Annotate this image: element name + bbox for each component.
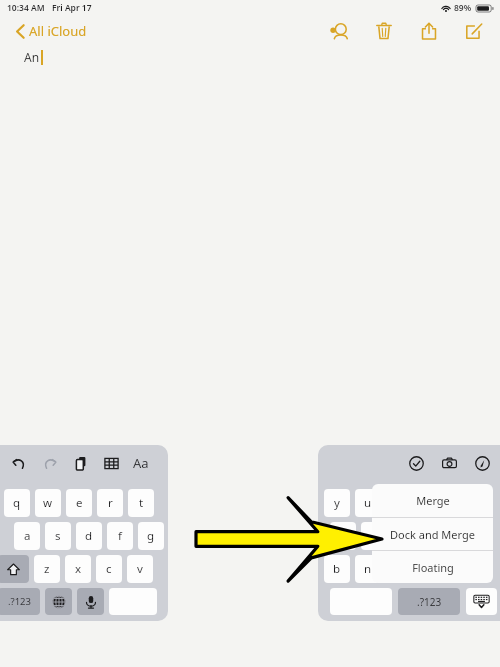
staticText: Merge	[416, 493, 450, 508]
staticText: j	[373, 528, 376, 544]
button[interactable]: w	[35, 489, 61, 517]
staticText: b	[333, 561, 341, 577]
button[interactable]: k	[392, 522, 418, 550]
staticText: q	[13, 495, 21, 511]
button[interactable]: Markup	[472, 453, 492, 473]
button[interactable]: f	[107, 522, 133, 550]
button[interactable]: Add people	[327, 19, 351, 43]
button[interactable]: Floating	[372, 551, 493, 583]
staticText: h	[339, 528, 347, 544]
staticText: s	[55, 528, 61, 544]
staticText: x	[75, 561, 82, 577]
button[interactable]: Space	[330, 588, 392, 615]
staticText: 89%	[454, 2, 472, 14]
staticText: f	[118, 528, 122, 544]
button[interactable]: r	[97, 489, 123, 517]
button[interactable]: Delete	[372, 19, 396, 43]
button[interactable]: y	[324, 489, 350, 517]
button[interactable]: t	[128, 489, 154, 517]
button[interactable]: n	[355, 555, 381, 583]
button[interactable]: u	[355, 489, 381, 517]
button[interactable]: Shift	[0, 555, 29, 583]
button[interactable]: q	[4, 489, 30, 517]
button[interactable]: Space	[109, 588, 157, 615]
button[interactable]: b	[324, 555, 350, 583]
button[interactable]: Undo	[8, 453, 28, 473]
button[interactable]: Dictate	[77, 588, 104, 615]
staticText: d	[85, 528, 93, 544]
button[interactable]: e	[66, 489, 92, 517]
button[interactable]: Language	[45, 588, 72, 615]
staticText: y	[334, 495, 340, 511]
button[interactable]: Camera	[439, 453, 459, 473]
button[interactable]: .?123	[398, 588, 460, 615]
staticText: g	[147, 528, 155, 544]
staticText: c	[106, 561, 112, 577]
button[interactable]: s	[45, 522, 71, 550]
staticText: .?123	[8, 595, 31, 608]
staticText: An	[24, 49, 40, 65]
button[interactable]: Table	[101, 453, 121, 473]
button[interactable]: j	[361, 522, 387, 550]
staticText: n	[364, 561, 372, 577]
button[interactable]: Checklist	[406, 453, 426, 473]
button[interactable]: Dock and Merge	[372, 518, 493, 550]
staticText: u	[364, 495, 372, 511]
staticText: Aa	[133, 454, 149, 472]
button[interactable]: Compose	[462, 19, 486, 43]
staticText: t	[139, 495, 144, 511]
staticText: e	[76, 495, 83, 511]
staticText: v	[137, 561, 143, 577]
button[interactable]: z	[34, 555, 60, 583]
staticText: r	[108, 495, 113, 511]
button[interactable]: Redo	[40, 453, 60, 473]
button[interactable]: g	[138, 522, 164, 550]
button[interactable]: Hide keyboard	[466, 588, 497, 615]
staticText: a	[24, 528, 31, 544]
staticText: .?123	[417, 595, 442, 609]
button[interactable]: a	[14, 522, 40, 550]
button[interactable]: x	[65, 555, 91, 583]
button[interactable]: All iCloud	[12, 18, 91, 44]
staticText: Floating	[412, 560, 454, 575]
staticText: All iCloud	[29, 22, 87, 40]
staticText: Fri Apr 17	[52, 2, 92, 14]
staticText: Dock and Merge	[390, 527, 475, 542]
staticText: k	[402, 528, 409, 544]
button[interactable]: Aa	[130, 452, 152, 474]
button[interactable]: c	[96, 555, 122, 583]
button[interactable]: Merge	[372, 484, 493, 517]
staticText: 10:34 AM	[7, 2, 45, 14]
button[interactable]: d	[76, 522, 102, 550]
staticText: z	[44, 561, 50, 577]
button[interactable]: v	[127, 555, 153, 583]
button[interactable]: h	[330, 522, 356, 550]
button[interactable]: .?123	[0, 588, 40, 615]
staticText: w	[43, 495, 53, 511]
button[interactable]: Paste	[71, 453, 91, 473]
button[interactable]: Share	[417, 19, 441, 43]
